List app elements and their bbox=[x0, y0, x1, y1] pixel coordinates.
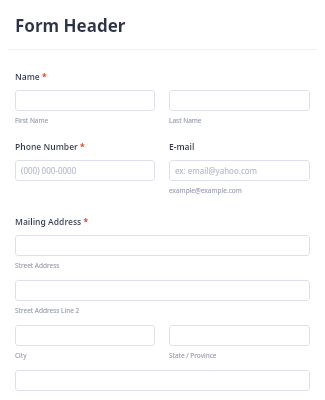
button[interactable]: (000) 000-0000 bbox=[15, 160, 155, 181]
button[interactable] bbox=[169, 325, 310, 346]
staticText: Street Address Line 2 bbox=[15, 306, 80, 315]
button[interactable] bbox=[15, 280, 310, 301]
staticText: (000) 000-0000 bbox=[21, 165, 77, 176]
staticText: example@example.com bbox=[169, 186, 242, 195]
staticText: Last Name bbox=[169, 116, 202, 125]
staticText: Mailing Address * bbox=[15, 216, 89, 228]
staticText: Form Header bbox=[15, 14, 126, 37]
staticText: City bbox=[15, 351, 27, 360]
staticText: E-mail bbox=[169, 141, 195, 153]
staticText: State / Province bbox=[169, 351, 217, 360]
staticText: Name * bbox=[15, 71, 47, 83]
staticText: ex: email@yahoo.com bbox=[175, 165, 258, 176]
staticText: Street Address bbox=[15, 261, 60, 270]
staticText: First Name bbox=[15, 116, 49, 125]
button[interactable] bbox=[15, 325, 155, 346]
button[interactable] bbox=[169, 90, 310, 111]
button[interactable] bbox=[15, 235, 310, 256]
button[interactable]: ex: email@yahoo.com bbox=[169, 160, 310, 181]
button[interactable] bbox=[15, 90, 155, 111]
button[interactable] bbox=[15, 370, 310, 391]
staticText: Phone Number * bbox=[15, 141, 85, 153]
